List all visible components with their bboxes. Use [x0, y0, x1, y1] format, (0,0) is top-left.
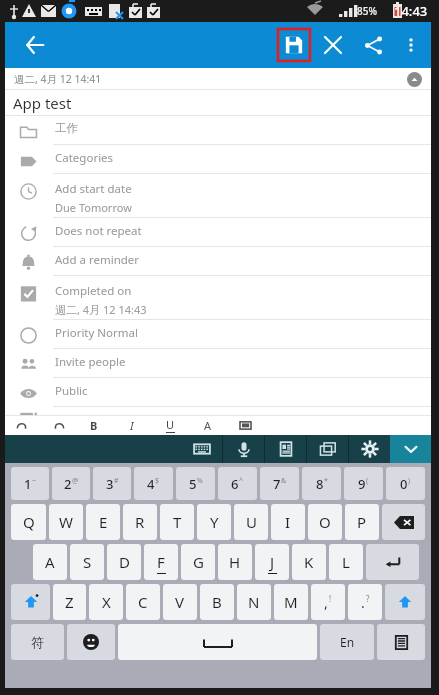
button[interactable]: A [199, 416, 217, 434]
button[interactable]: Input method [377, 624, 425, 660]
button[interactable]: Emoji [67, 624, 115, 660]
button[interactable]: 6 [218, 467, 257, 500]
button[interactable]: Back [15, 25, 55, 65]
button[interactable]: 9 [344, 467, 383, 500]
button[interactable]: I [123, 416, 141, 434]
button[interactable]: Y [197, 504, 231, 540]
button[interactable]: V [163, 584, 197, 620]
button[interactable]: 4 [134, 467, 173, 500]
button[interactable]: W [49, 504, 83, 540]
staticText: F [157, 552, 165, 572]
staticText: X [102, 592, 111, 612]
staticText: Does not repeat [55, 223, 142, 239]
button[interactable]: S [70, 544, 104, 580]
button[interactable]: I [271, 504, 305, 540]
button[interactable]: B [85, 416, 103, 434]
button[interactable]: N [237, 584, 271, 620]
staticText: W [59, 512, 73, 532]
button[interactable]: H [218, 544, 252, 580]
button[interactable]: 8 [302, 467, 341, 500]
button[interactable]: Add a check-list [5, 407, 431, 415]
staticText: ? [366, 593, 370, 604]
button[interactable]: Categories [5, 145, 431, 174]
staticText: $ [155, 476, 160, 486]
button[interactable]: Completed on [5, 276, 431, 320]
button[interactable]: Voice input [223, 435, 264, 463]
button[interactable]: P [345, 504, 379, 540]
button[interactable]: Save [275, 26, 313, 64]
staticText: R [135, 512, 145, 532]
button[interactable]: U [234, 504, 268, 540]
button[interactable]: 0 [386, 467, 425, 500]
button[interactable]: 7 [260, 467, 299, 500]
staticText: M [284, 592, 298, 612]
staticText: 2 [64, 475, 72, 493]
button[interactable]: Space [118, 624, 317, 660]
button[interactable]: C [126, 584, 160, 620]
button[interactable]: 工作 [5, 116, 431, 145]
button[interactable]: More options [393, 27, 429, 63]
button[interactable]: . [348, 584, 382, 620]
button[interactable]: T [160, 504, 194, 540]
button[interactable]: En [320, 624, 374, 660]
button[interactable]: Backspace [382, 504, 425, 540]
button[interactable]: Public [5, 378, 431, 407]
button[interactable]: Keyboard layout [181, 435, 222, 463]
button[interactable]: Switch keyboard [307, 435, 348, 463]
button[interactable]: Hide keyboard [390, 435, 431, 463]
staticText: E [99, 512, 108, 532]
staticText: En [340, 634, 355, 650]
button[interactable]: F [144, 544, 178, 580]
button[interactable]: D [107, 544, 141, 580]
button[interactable]: 5 [176, 467, 215, 500]
button[interactable]: 3 [93, 467, 131, 500]
staticText: Z [65, 592, 74, 612]
button[interactable]: A [33, 544, 67, 580]
button[interactable]: Does not repeat [5, 218, 431, 247]
button[interactable]: M [274, 584, 308, 620]
button[interactable]: K [292, 544, 326, 580]
staticText: @ [72, 476, 79, 486]
button[interactable]: Add start date [5, 174, 431, 218]
button[interactable]: L [329, 544, 363, 580]
staticText: V [175, 592, 185, 612]
button[interactable]: Shift [385, 584, 425, 620]
button[interactable]: J [255, 544, 289, 580]
button[interactable]: 1 [11, 467, 49, 500]
button[interactable]: B [200, 584, 234, 620]
staticText: O [319, 512, 331, 532]
button[interactable]: R [123, 504, 157, 540]
staticText: 1 [24, 475, 32, 493]
button[interactable]: , [311, 584, 345, 620]
button[interactable]: Z [53, 584, 86, 620]
button[interactable]: O [308, 504, 342, 540]
button[interactable]: Comment [235, 415, 255, 435]
button[interactable]: Clipboard [265, 435, 306, 463]
button[interactable]: E [86, 504, 120, 540]
button[interactable]: Enter [366, 544, 419, 580]
button[interactable]: Share [353, 25, 393, 65]
button[interactable]: 符 [11, 624, 64, 660]
staticText: . [361, 593, 365, 612]
button[interactable]: U [161, 416, 179, 434]
button[interactable]: Collapse [404, 69, 424, 89]
button[interactable]: Undo [11, 415, 31, 435]
staticText: ( [366, 476, 369, 486]
staticText: % [197, 476, 203, 486]
button[interactable]: Invite people [5, 349, 431, 378]
button[interactable]: G [181, 544, 215, 580]
button[interactable]: Priority Normal [5, 320, 431, 349]
staticText: App test [13, 93, 72, 113]
staticText: K [304, 552, 314, 572]
button[interactable]: Redo [49, 415, 69, 435]
button[interactable]: Settings [349, 435, 390, 463]
button[interactable]: Q [11, 504, 46, 540]
button[interactable]: Shift [11, 584, 50, 620]
staticText: I [285, 512, 291, 532]
button[interactable]: X [89, 584, 123, 620]
button[interactable]: Close [313, 25, 353, 65]
staticText: 9 [358, 475, 366, 493]
button[interactable]: Add a reminder [5, 247, 431, 276]
button[interactable]: 2 [52, 467, 90, 500]
